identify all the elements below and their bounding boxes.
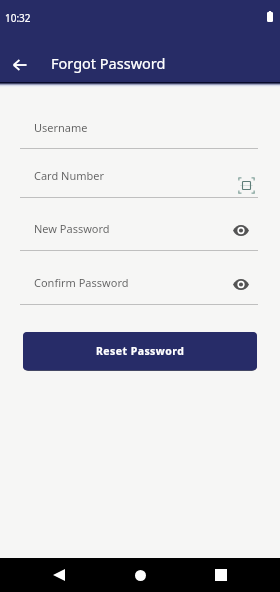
button[interactable]: Card Number	[20, 165, 258, 198]
button[interactable]: Username	[20, 116, 258, 149]
button[interactable]: Recents	[205, 559, 237, 591]
staticText: Reset Password	[96, 344, 185, 358]
button[interactable]: Reset Password	[23, 332, 257, 370]
button[interactable]: Confirm Password	[20, 272, 258, 305]
button[interactable]: New Password	[20, 218, 258, 251]
button[interactable]: Home	[124, 559, 156, 591]
staticText: Card Number	[34, 168, 105, 183]
button[interactable]: Toggle password visibility	[226, 215, 256, 245]
staticText: Forgot Password	[51, 53, 166, 73]
button[interactable]: Toggle password visibility	[226, 269, 256, 299]
staticText: Confirm Password	[34, 275, 129, 290]
staticText: 10:32	[5, 11, 31, 25]
button[interactable]: Back	[6, 51, 34, 79]
button[interactable]: Scan card	[231, 170, 261, 200]
staticText: New Password	[34, 221, 110, 236]
staticText: Username	[34, 120, 88, 135]
button[interactable]: Back	[43, 559, 75, 591]
